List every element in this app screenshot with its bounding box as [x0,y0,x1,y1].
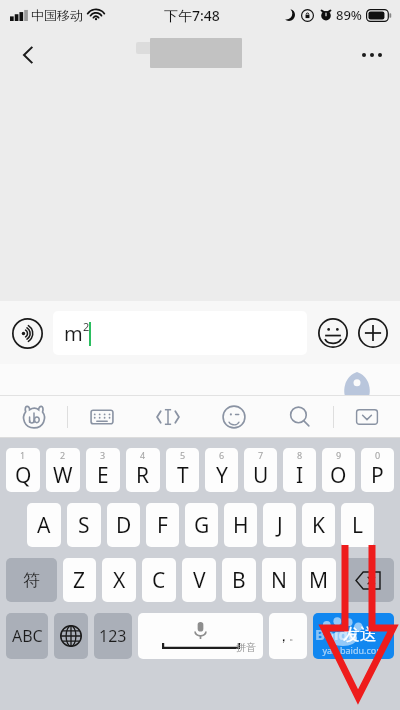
button[interactable]: Z [63,558,96,602]
button[interactable]: 3 [86,448,120,492]
button[interactable]: K [302,503,335,547]
staticText: 2 [83,319,90,334]
button[interactable]: 2 [46,448,80,492]
button[interactable]: ， [269,613,307,659]
button[interactable]: ABC [6,613,48,659]
button[interactable]: Baidu [313,613,394,659]
button[interactable]: Keyboard settings [68,396,135,438]
staticText: W [53,461,73,490]
button[interactable]: 1 [6,448,40,492]
button[interactable]: Search [267,396,333,438]
staticText: K [312,511,325,540]
staticText: B [232,566,246,595]
staticText: C [152,566,166,595]
button[interactable]: 9 [322,448,355,492]
button[interactable]: 0 [361,448,394,492]
staticText: R [136,461,150,490]
button[interactable]: S [67,503,101,547]
staticText: 拼音 [236,641,256,654]
button[interactable]: 8 [283,448,316,492]
button[interactable]: More options [350,33,394,77]
staticText: I [296,461,304,490]
staticText: 1 [20,449,26,461]
button[interactable]: D [107,503,140,547]
button[interactable]: 7 [244,448,277,492]
staticText: D [116,511,132,540]
staticText: 5 [180,449,186,461]
button[interactable]: m [53,311,307,355]
staticText: H [233,511,249,540]
button[interactable]: L [341,503,374,547]
button[interactable]: Backspace [342,558,394,602]
button[interactable]: H [224,503,257,547]
staticText: Z [73,566,86,595]
staticText: ， [276,627,291,646]
button[interactable]: Emoticons [201,396,267,438]
staticText: Y [216,461,228,490]
staticText: 下午7:48 [164,6,220,25]
staticText: 中国移动 [31,7,83,23]
button[interactable]: Space [138,613,263,659]
staticText: 89% [336,6,362,24]
button[interactable]: B [222,558,256,602]
button[interactable]: Switch language [54,613,88,659]
staticText: 。 [289,630,299,643]
button[interactable]: 5 [166,448,199,492]
staticText: ABC [12,625,43,647]
staticText: V [193,566,206,595]
button[interactable]: Move cursor [135,396,201,438]
button[interactable]: Back [6,33,50,77]
button[interactable]: 4 [126,448,160,492]
staticText: 2 [60,449,66,461]
button[interactable]: F [146,503,179,547]
staticText: O [330,461,347,490]
button[interactable]: 符 [6,558,57,602]
staticText: 0 [375,449,381,461]
staticText: 4 [140,449,146,461]
button[interactable]: More [356,316,390,350]
button[interactable]: A [27,503,61,547]
staticText: L [352,511,364,540]
button[interactable]: Hide keyboard [334,396,400,438]
staticText: 3 [100,449,106,461]
staticText: M [309,566,329,595]
button[interactable]: Emoji [316,316,350,350]
staticText: 123 [99,625,127,647]
staticText: E [97,461,109,490]
button[interactable]: J [263,503,296,547]
button[interactable]: C [142,558,176,602]
staticText: S [78,511,90,540]
staticText: U [253,461,269,490]
staticText: m [64,320,83,347]
button[interactable]: 123 [94,613,132,659]
staticText: 8 [297,449,303,461]
staticText: Q [15,461,32,490]
staticText: F [157,511,168,540]
staticText: yan.baidu.com [322,644,385,656]
button[interactable]: V [182,558,216,602]
staticText: 7 [258,449,264,461]
staticText: N [271,566,287,595]
button[interactable]: Voice input [10,316,44,350]
staticText: T [177,461,189,490]
staticText: 发送 [343,624,377,645]
staticText: 9 [336,449,342,461]
button[interactable]: X [102,558,136,602]
staticText: Baidu [315,624,358,644]
staticText: A [37,511,51,540]
button[interactable]: Baidu input [0,396,67,438]
button[interactable]: G [185,503,218,547]
staticText: P [371,461,384,490]
staticText: 符 [23,570,40,591]
button[interactable]: 6 [205,448,238,492]
button[interactable]: M [302,558,336,602]
staticText: J [277,511,283,540]
staticText: G [194,511,210,540]
button[interactable]: N [262,558,296,602]
staticText: X [113,566,126,595]
staticText: 6 [219,449,225,461]
